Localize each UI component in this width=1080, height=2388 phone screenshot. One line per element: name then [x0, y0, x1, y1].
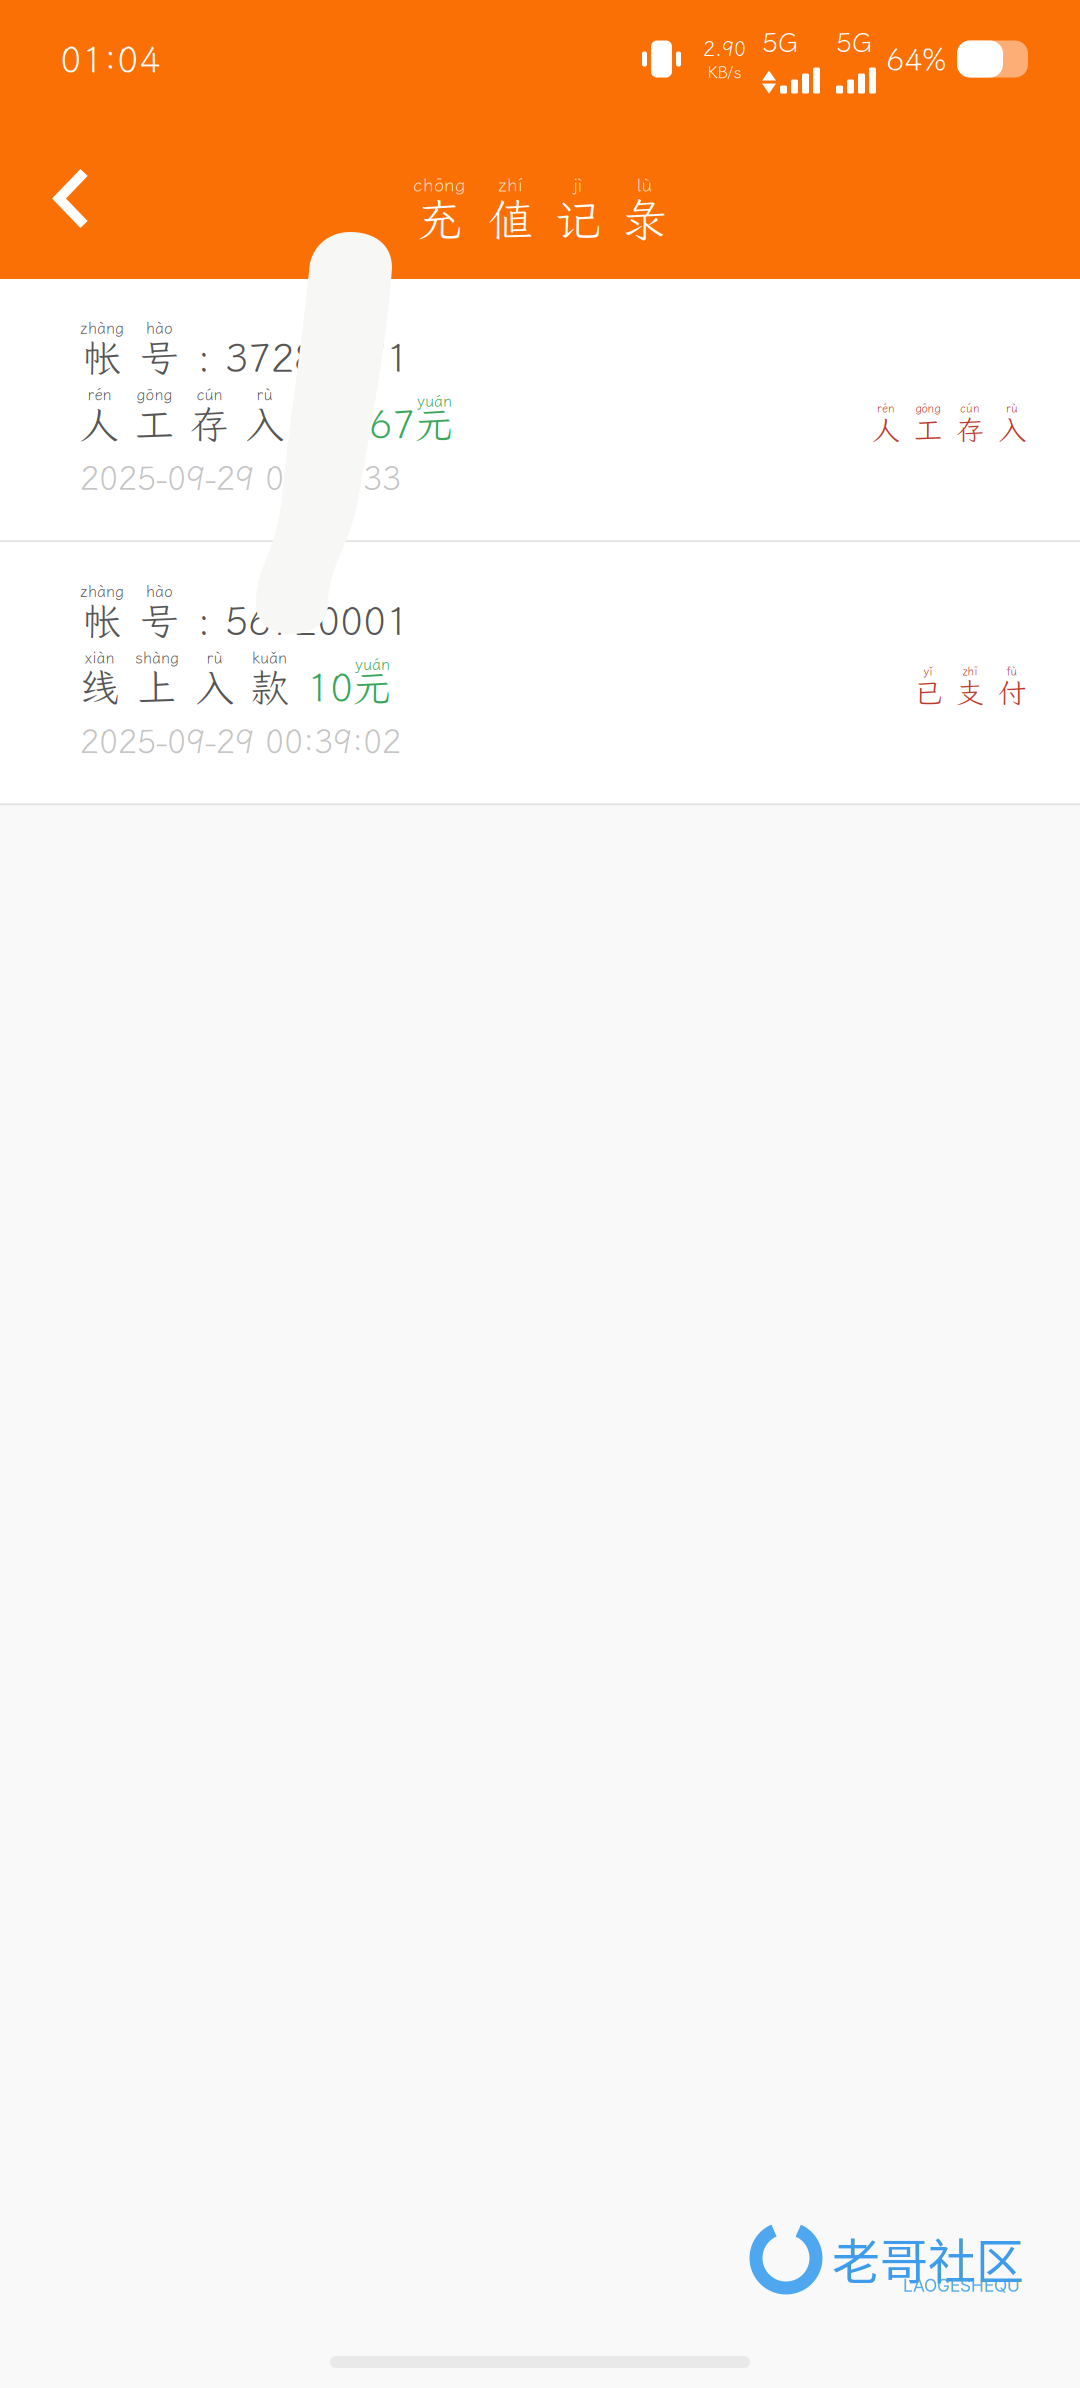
- staticText: rén: [87, 384, 111, 405]
- staticText: 人: [872, 411, 900, 448]
- staticText: 入: [195, 662, 234, 712]
- staticText: yuán: [355, 654, 390, 674]
- staticText: lù: [636, 173, 652, 197]
- staticText: cún: [960, 401, 980, 416]
- staticText: 01:04: [60, 35, 161, 83]
- staticText: zhàng: [80, 581, 124, 601]
- staticText: yǐ: [923, 664, 932, 679]
- staticText: LAOGESHEQU: [903, 2275, 1020, 2296]
- staticText: fù: [1006, 664, 1017, 679]
- button[interactable]: zhàng: [0, 279, 1080, 540]
- staticText: 号: [140, 595, 179, 646]
- staticText: rù: [206, 647, 222, 668]
- staticText: 10元: [307, 662, 392, 712]
- staticText: zhī: [962, 664, 977, 679]
- staticText: 帐: [82, 332, 121, 383]
- staticText: chōng: [413, 173, 466, 197]
- staticText: jì: [572, 173, 582, 197]
- staticText: rù: [1006, 401, 1018, 416]
- staticText: 工: [135, 398, 174, 449]
- staticText: 记: [555, 189, 600, 249]
- staticText: 支: [956, 674, 984, 711]
- staticText: 录: [622, 189, 667, 249]
- staticText: 37289071: [225, 332, 409, 383]
- staticText: cún: [196, 384, 222, 405]
- staticText: 付: [998, 674, 1026, 711]
- staticText: 64%: [886, 39, 947, 79]
- staticText: shàng: [135, 647, 179, 668]
- staticText: 2025-09-29 00:43:33: [80, 457, 401, 499]
- button[interactable]: Back: [0, 137, 132, 259]
- staticText: 2025-09-29 00:39:02: [80, 720, 401, 762]
- staticText: zhàng: [80, 318, 124, 338]
- staticText: 线: [80, 662, 119, 712]
- staticText: 惠,:67元: [302, 398, 454, 449]
- staticText: 值: [488, 189, 533, 249]
- staticText: kuǎn: [252, 647, 287, 668]
- staticText: rù: [256, 384, 272, 405]
- staticText: 56720001: [225, 595, 409, 646]
- staticText: 老哥社区: [832, 2223, 1024, 2293]
- staticText: 存: [956, 411, 984, 448]
- staticText: hào: [146, 318, 173, 338]
- staticText: 人: [80, 398, 119, 449]
- staticText: 入: [998, 411, 1026, 448]
- staticText: 存: [190, 398, 229, 449]
- staticText: 5G: [762, 24, 798, 59]
- staticText: xiàn: [84, 647, 114, 668]
- staticText: yuán: [417, 391, 452, 411]
- staticText: 帐: [82, 595, 121, 646]
- staticText: gōng: [136, 384, 172, 405]
- button[interactable]: zhàng: [0, 542, 1080, 803]
- staticText: 款: [250, 662, 289, 712]
- staticText: 2.90: [703, 35, 746, 62]
- staticText: :: [197, 595, 211, 646]
- staticText: 已: [914, 674, 942, 711]
- staticText: rén: [877, 401, 895, 416]
- staticText: 工: [914, 411, 942, 448]
- staticText: 入: [245, 398, 284, 449]
- staticText: :: [197, 332, 211, 383]
- staticText: 5G: [836, 24, 872, 59]
- staticText: hào: [146, 581, 173, 601]
- staticText: 号: [140, 332, 179, 383]
- staticText: KB/s: [707, 62, 741, 83]
- staticText: gōng: [915, 401, 940, 416]
- staticText: 充: [417, 189, 462, 249]
- staticText: 上: [137, 662, 176, 712]
- staticText: zhí: [498, 173, 523, 197]
